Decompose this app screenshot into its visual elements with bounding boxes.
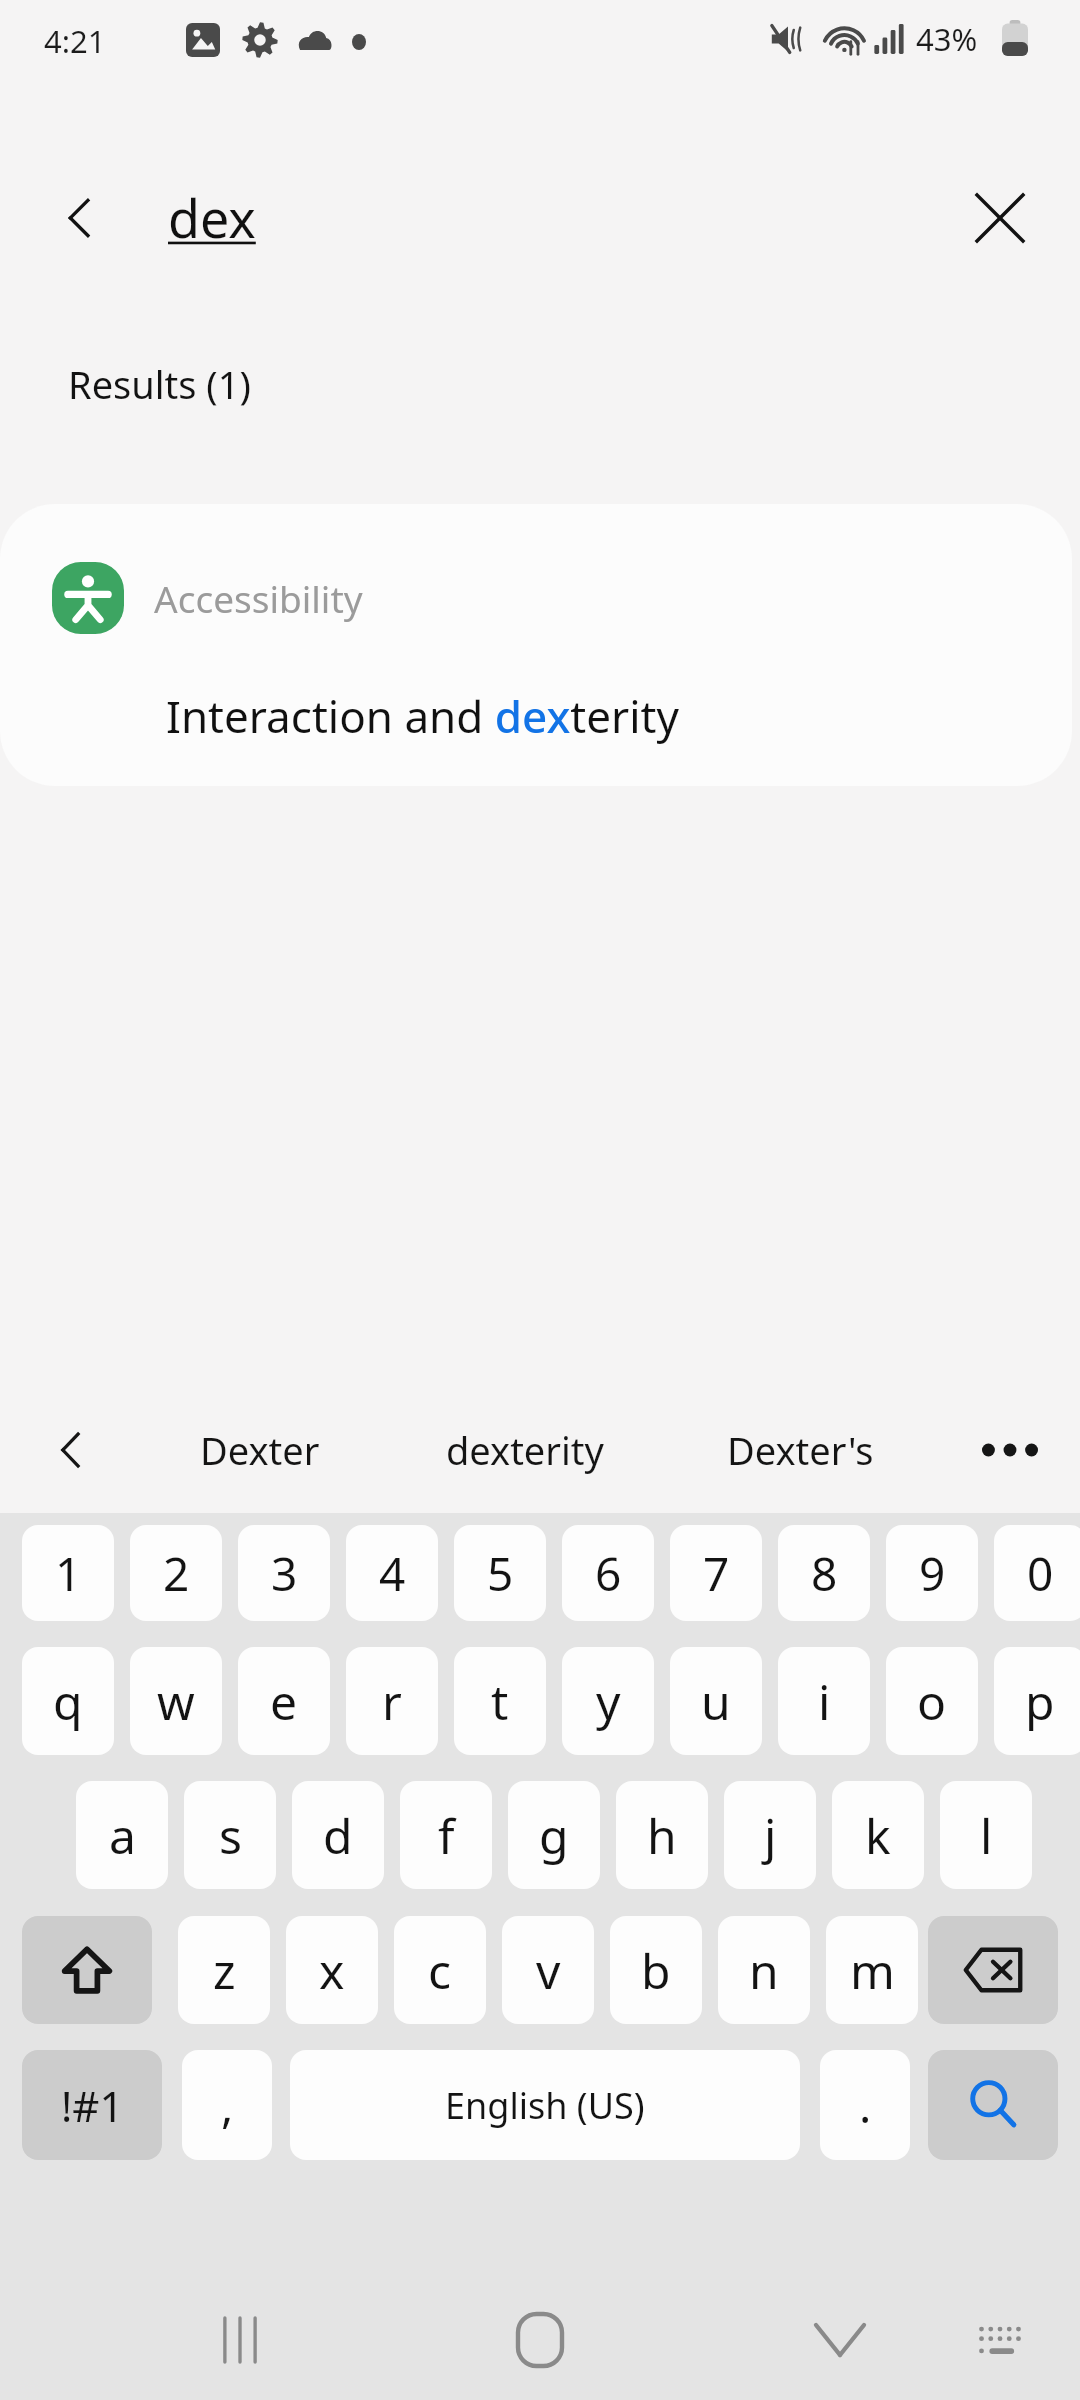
button[interactable]: 5 — [454, 1525, 546, 1621]
staticText: m — [850, 1938, 895, 2003]
button[interactable]: Search — [928, 2050, 1058, 2160]
button[interactable]: 1 — [22, 1525, 114, 1621]
staticText: b — [641, 1938, 671, 2003]
button[interactable]: r — [346, 1647, 438, 1755]
button[interactable]: 0 — [994, 1525, 1080, 1621]
staticText: 43% — [916, 18, 978, 60]
staticText: c — [428, 1938, 452, 2003]
staticText: v — [536, 1938, 561, 2003]
staticText: . — [859, 2074, 872, 2137]
staticText: !#1 — [61, 2077, 124, 2134]
button[interactable]: f — [400, 1781, 492, 1889]
button[interactable]: Previous suggestions — [22, 1400, 122, 1500]
button[interactable]: w — [130, 1647, 222, 1755]
staticText: 9 — [919, 1542, 946, 1605]
button[interactable]: Accessibility — [0, 504, 1072, 786]
button[interactable]: k — [832, 1781, 924, 1889]
staticText: f — [438, 1803, 455, 1868]
button[interactable]: t — [454, 1647, 546, 1755]
button[interactable]: p — [994, 1647, 1080, 1755]
button[interactable]: c — [394, 1916, 486, 2024]
button[interactable]: 7 — [670, 1525, 762, 1621]
staticText: u — [701, 1669, 731, 1734]
button[interactable]: Home — [490, 2290, 590, 2390]
button[interactable]: !#1 — [22, 2050, 162, 2160]
button[interactable]: o — [886, 1647, 978, 1755]
staticText: dexterity — [446, 1424, 604, 1476]
button[interactable]: , — [182, 2050, 272, 2160]
staticText: 4:21 — [44, 20, 106, 62]
button[interactable]: z — [178, 1916, 270, 2024]
staticText: dex — [168, 182, 256, 253]
button[interactable]: Dexter's — [675, 1400, 925, 1500]
button[interactable]: More options — [960, 1400, 1060, 1500]
button[interactable]: 2 — [130, 1525, 222, 1621]
staticText: l — [980, 1803, 993, 1868]
staticText: 0 — [1027, 1542, 1054, 1605]
staticText: p — [1025, 1669, 1055, 1734]
staticText: i — [818, 1669, 831, 1734]
staticText: g — [539, 1803, 569, 1868]
button[interactable]: q — [22, 1647, 114, 1755]
button[interactable]: y — [562, 1647, 654, 1755]
button[interactable]: l — [940, 1781, 1032, 1889]
button[interactable]: b — [610, 1916, 702, 2024]
button[interactable]: s — [184, 1781, 276, 1889]
button[interactable]: d — [292, 1781, 384, 1889]
staticText: 3 — [271, 1542, 298, 1605]
staticText: 7 — [703, 1542, 730, 1605]
staticText: Interaction and dexterity — [166, 686, 679, 746]
button[interactable]: dexterity — [400, 1400, 650, 1500]
button[interactable]: . — [820, 2050, 910, 2160]
staticText: n — [749, 1938, 779, 2003]
button[interactable]: i — [778, 1647, 870, 1755]
button[interactable]: English (US) — [290, 2050, 800, 2160]
staticText: j — [764, 1803, 777, 1868]
staticText: e — [270, 1669, 298, 1734]
button[interactable]: Shift — [22, 1916, 152, 2024]
staticText: d — [323, 1803, 353, 1868]
button[interactable]: a — [76, 1781, 168, 1889]
button[interactable]: e — [238, 1647, 330, 1755]
staticText: Results (1) — [68, 358, 251, 410]
button[interactable]: 6 — [562, 1525, 654, 1621]
button[interactable]: Backspace — [928, 1916, 1058, 2024]
staticText: q — [53, 1669, 83, 1734]
staticText: , — [221, 2074, 234, 2137]
button[interactable]: n — [718, 1916, 810, 2024]
button[interactable]: x — [286, 1916, 378, 2024]
button[interactable]: h — [616, 1781, 708, 1889]
button[interactable]: Dexter — [150, 1400, 370, 1500]
staticText: 1 — [55, 1542, 82, 1605]
button[interactable]: Change keyboard — [950, 2290, 1050, 2390]
button[interactable]: 8 — [778, 1525, 870, 1621]
staticText: r — [382, 1669, 402, 1734]
button[interactable]: Clear search — [950, 168, 1050, 268]
staticText: x — [319, 1938, 345, 2003]
staticText: y — [596, 1669, 621, 1734]
button[interactable]: u — [670, 1647, 762, 1755]
button[interactable]: m — [826, 1916, 918, 2024]
staticText: 5 — [487, 1542, 514, 1605]
staticText: 2 — [163, 1542, 190, 1605]
button[interactable]: Recent apps — [190, 2290, 290, 2390]
staticText: English (US) — [445, 2081, 645, 2130]
staticText: 6 — [595, 1542, 622, 1605]
button[interactable]: j — [724, 1781, 816, 1889]
button[interactable]: g — [508, 1781, 600, 1889]
staticText: k — [865, 1803, 891, 1868]
button[interactable]: dex — [168, 158, 728, 276]
staticText: o — [917, 1669, 947, 1734]
staticText: Accessibility — [154, 573, 363, 623]
button[interactable]: Hide keyboard — [790, 2290, 890, 2390]
button[interactable]: v — [502, 1916, 594, 2024]
staticText: z — [213, 1938, 236, 2003]
staticText: w — [157, 1669, 195, 1734]
staticText: a — [109, 1803, 136, 1868]
button[interactable]: 3 — [238, 1525, 330, 1621]
button[interactable]: 9 — [886, 1525, 978, 1621]
button[interactable]: 4 — [346, 1525, 438, 1621]
staticText: Dexter — [200, 1424, 320, 1476]
staticText: Dexter's — [727, 1424, 874, 1476]
button[interactable]: Back — [30, 168, 130, 268]
